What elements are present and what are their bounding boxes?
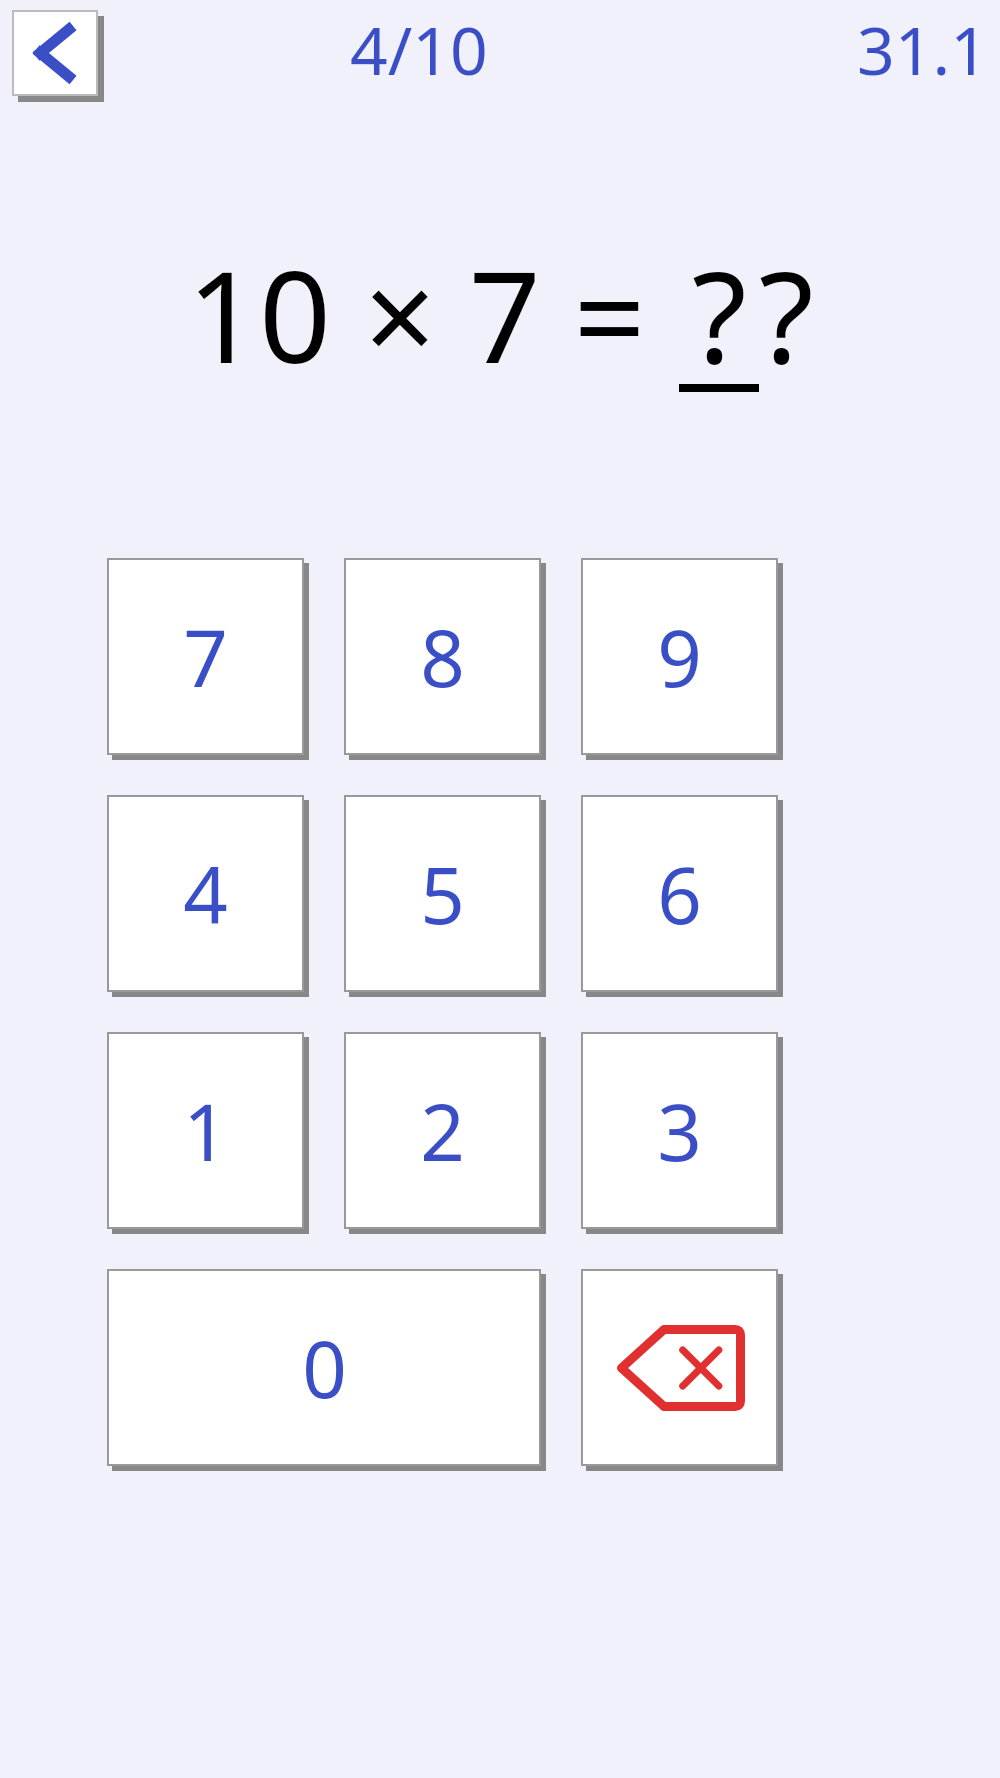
button[interactable]: 9 [581, 558, 778, 755]
staticText: 6 [657, 841, 702, 947]
button[interactable]: 6 [581, 795, 778, 992]
staticText: 3 [657, 1078, 702, 1184]
button[interactable]: 4 [107, 795, 304, 992]
staticText: 0 [302, 1315, 347, 1421]
button[interactable]: 1 [107, 1032, 304, 1229]
button[interactable]: Back [12, 10, 98, 96]
staticText: 1 [183, 1078, 228, 1184]
button[interactable]: 7 [107, 558, 304, 755]
staticText: 7 [183, 604, 228, 710]
button[interactable]: 0 [107, 1269, 541, 1466]
staticText: 2 [420, 1078, 465, 1184]
staticText: 5 [420, 841, 465, 947]
staticText: 9 [657, 604, 702, 710]
button[interactable]: 3 [581, 1032, 778, 1229]
staticText: 31.1 [857, 4, 988, 94]
button[interactable]: 8 [344, 558, 541, 755]
staticText: 8 [420, 604, 465, 710]
staticText: 4 [183, 841, 228, 947]
staticText: ? [692, 228, 747, 400]
staticText: 4/10 [350, 4, 488, 94]
button[interactable]: Backspace [581, 1269, 778, 1466]
button[interactable]: 2 [344, 1032, 541, 1229]
staticText: ? [759, 228, 814, 400]
button[interactable]: 5 [344, 795, 541, 992]
staticText: 10 × 7 = [187, 228, 679, 400]
